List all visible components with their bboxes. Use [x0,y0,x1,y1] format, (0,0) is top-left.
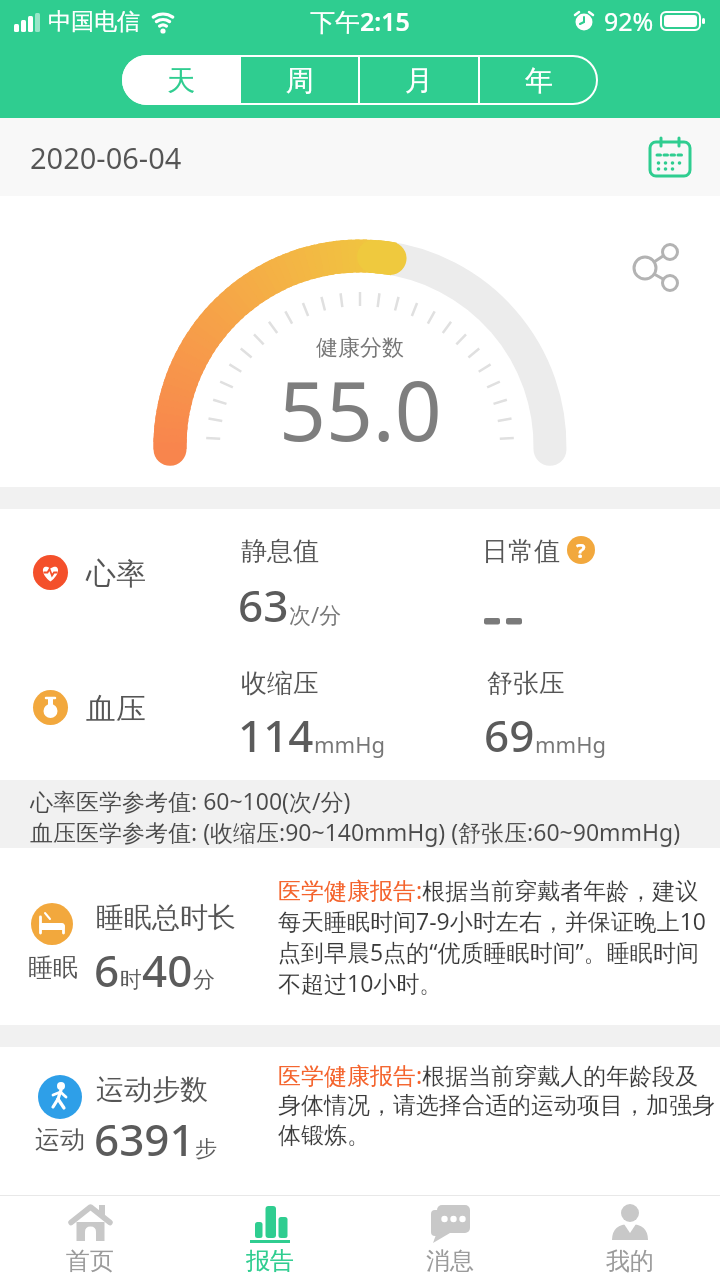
staticText: 睡眠 [27,952,79,983]
staticText: 心率医学参考值: 60~100(次/分) [30,785,351,816]
staticText: 63 [238,575,289,635]
staticText: 日常值 [482,535,560,568]
staticText: 健康分数 [316,334,404,362]
staticText: mmHg [314,729,385,759]
staticText: 报告 [246,1246,294,1276]
staticText: 心率 [86,555,146,593]
button[interactable] [625,232,685,292]
staticText: 下午2:15 [310,4,410,38]
staticText: 中国电信 [48,7,140,36]
staticText: 运动步数 [96,1072,208,1107]
staticText: 月 [405,63,433,98]
button[interactable]: 首页 [0,1196,180,1281]
staticText: 睡眠总时长 [96,900,236,935]
staticText: 分 [193,966,215,994]
button[interactable]: 月 [360,55,478,105]
staticText: 首页 [66,1246,114,1276]
button[interactable]: ? [567,536,595,564]
staticText: 92% [604,4,654,38]
staticText: 舒张压 [487,667,565,700]
staticText: 步 [195,1135,217,1163]
staticText: 收缩压 [241,667,319,700]
staticText: mmHg [535,729,606,759]
staticText: 天 [167,63,195,98]
staticText: 消息 [426,1246,474,1276]
staticText: 医学健康报告:根据当前穿戴人的年龄段及身体情况，请选择合适的运动项目，加强身体锻… [278,1059,720,1150]
staticText: 40 [142,940,193,1000]
staticText: 血压 [86,690,146,728]
staticText: 114 [238,705,314,765]
button[interactable]: 年 [480,55,598,105]
button[interactable]: 天 [122,55,239,105]
staticText: 2020-06-04 [30,138,182,177]
staticText: 我的 [606,1246,654,1276]
button[interactable]: 消息 [360,1196,540,1281]
staticText: 静息值 [241,535,319,568]
button[interactable]: 报告 [180,1196,360,1281]
staticText: 年 [525,63,553,98]
staticText: 时 [120,966,142,994]
staticText: 55.0 [279,353,442,465]
staticText: 运动 [34,1124,86,1155]
staticText: 次/分 [289,599,342,629]
staticText: 血压医学参考值: (收缩压:90~140mmHg) (舒张压:60~90mmHg… [30,816,681,847]
staticText: ? [576,537,586,564]
staticText: 周 [286,63,314,98]
button[interactable] [648,135,692,179]
button[interactable]: 周 [241,55,358,105]
staticText: 6 [94,940,120,1000]
button[interactable]: 我的 [540,1196,720,1281]
staticText: 69 [484,705,535,765]
staticText: 医学健康报告:根据当前穿戴者年龄，建议每天睡眠时间7-9小时左右，并保证晚上10… [278,874,710,998]
staticText: 6391 [94,1109,195,1169]
